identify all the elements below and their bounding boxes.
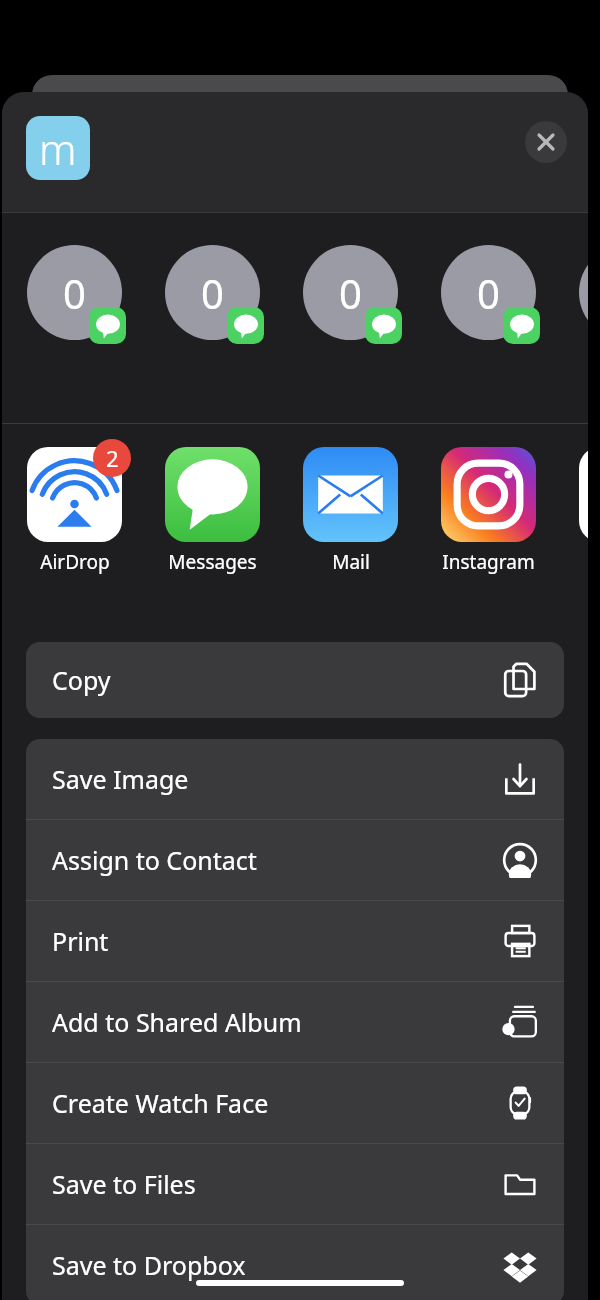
button[interactable]: 0 [441, 245, 536, 340]
staticText: Save to Files [52, 1167, 196, 1201]
button[interactable]: Instagram [441, 447, 536, 575]
button[interactable]: Create Watch Face [26, 1063, 564, 1143]
button[interactable]: Messages [165, 447, 260, 575]
staticText: Print [52, 924, 109, 958]
button[interactable]: 0 [579, 245, 588, 340]
button[interactable]: Mail [303, 447, 398, 575]
button[interactable]: Save Image [26, 739, 564, 819]
staticText: Copy [52, 663, 111, 697]
button[interactable]: Google [579, 447, 588, 575]
staticText: 0 [339, 266, 362, 320]
staticText: 0 [477, 266, 500, 320]
staticText: AirDrop [40, 549, 110, 575]
button[interactable]: 0 [165, 245, 260, 340]
staticText: Save Image [52, 762, 189, 796]
button[interactable]: Assign to Contact [26, 820, 564, 900]
staticText: 0 [63, 266, 86, 320]
button[interactable]: Copy [26, 642, 564, 718]
button[interactable]: m [26, 116, 90, 180]
staticText: Messages [168, 549, 257, 575]
button[interactable]: Close [525, 121, 567, 163]
button[interactable]: 0 [303, 245, 398, 340]
button[interactable]: Print [26, 901, 564, 981]
button[interactable]: Save to Files [26, 1144, 564, 1224]
button[interactable]: Save to Dropbox [26, 1225, 564, 1300]
staticText: Mail [332, 549, 370, 575]
staticText: Add to Shared Album [52, 1005, 302, 1039]
staticText: Create Watch Face [52, 1086, 269, 1120]
button[interactable]: 0 [27, 245, 122, 340]
staticText: Instagram [442, 549, 535, 575]
staticText: Save to Dropbox [52, 1248, 246, 1282]
staticText: 2 [106, 443, 119, 473]
staticText: 0 [201, 266, 224, 320]
staticText: m [39, 120, 77, 177]
button[interactable]: Add to Shared Album [26, 982, 564, 1062]
staticText: Assign to Contact [52, 843, 257, 877]
button[interactable]: 2 [27, 447, 122, 575]
